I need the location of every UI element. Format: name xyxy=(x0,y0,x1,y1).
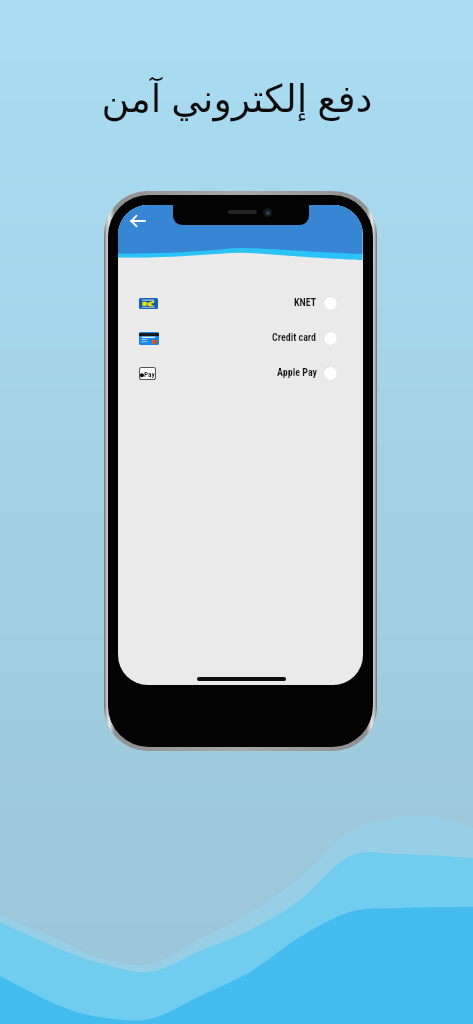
staticText: KNET xyxy=(294,297,317,309)
staticText: Credit card xyxy=(272,332,317,344)
button[interactable]: KNET xyxy=(118,291,363,315)
staticText: Apple Pay xyxy=(277,367,317,379)
button[interactable]: Back xyxy=(123,207,151,235)
staticText: Pay xyxy=(144,370,155,378)
button[interactable]: Pay xyxy=(118,361,363,385)
staticText: دفع إلكتروني آمن xyxy=(101,71,373,123)
button[interactable]: Credit card xyxy=(118,326,363,350)
